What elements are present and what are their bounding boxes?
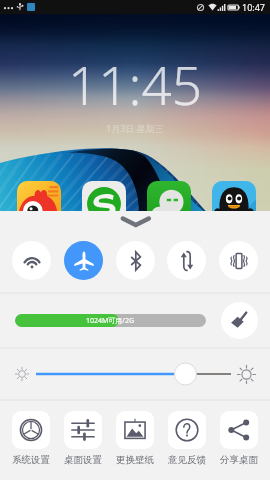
button[interactable]: 更换壁纸	[116, 400, 154, 466]
staticText: 分享桌面	[220, 454, 258, 466]
button[interactable]: Clean memory	[221, 302, 258, 339]
staticText: 系统设置	[12, 454, 50, 466]
button[interactable]: Airplane mode	[64, 241, 103, 280]
button[interactable]: Vibrate	[219, 241, 258, 280]
button[interactable]: 系统设置	[12, 400, 50, 466]
button[interactable]: Browser	[82, 181, 126, 225]
staticText: 意见反馈	[168, 454, 206, 466]
button[interactable]: 1024M可用/2G	[15, 314, 206, 327]
button[interactable]: Wi-Fi	[12, 241, 51, 280]
staticText: 10:47	[242, 1, 266, 13]
button[interactable]: WeChat	[147, 181, 191, 225]
button[interactable]: 桌面设置	[64, 400, 102, 466]
staticText: 更换壁纸	[116, 454, 154, 466]
staticText: 11:45	[68, 48, 202, 120]
button[interactable]: 分享桌面	[220, 400, 258, 466]
button[interactable]: Bluetooth	[116, 241, 155, 280]
button[interactable]: QQ	[212, 181, 256, 225]
button[interactable]: Weibo	[17, 181, 61, 225]
staticText: 桌面设置	[64, 454, 102, 466]
button[interactable]: 意见反馈	[168, 400, 206, 466]
button[interactable]: Mobile data	[167, 241, 206, 280]
staticText: 1月3日 星期三	[106, 122, 164, 134]
staticText: 1024M可用/2G	[86, 316, 135, 326]
